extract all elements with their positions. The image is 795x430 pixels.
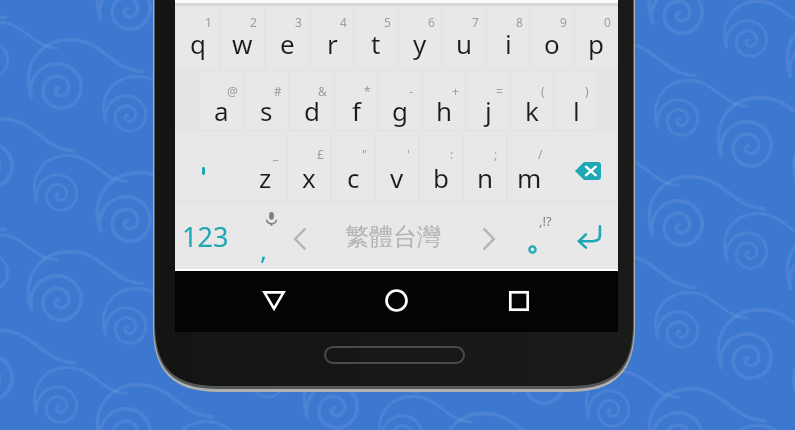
staticText: m xyxy=(517,160,542,195)
staticText: 2 xyxy=(250,14,257,30)
button[interactable]: - xyxy=(379,71,421,130)
staticText: ; xyxy=(494,146,498,162)
staticText: o xyxy=(544,26,560,61)
button[interactable]: 繁體台灣 xyxy=(285,202,503,268)
staticText: y xyxy=(413,26,427,61)
staticText: ' xyxy=(407,146,410,162)
staticText: a xyxy=(214,93,229,128)
staticText: w xyxy=(232,26,253,61)
staticText: * xyxy=(364,83,371,99)
staticText: 0 xyxy=(604,14,611,30)
staticText: 4 xyxy=(340,14,347,30)
staticText: p xyxy=(588,26,604,61)
button[interactable]: Period xyxy=(503,202,564,268)
staticText: , xyxy=(260,232,267,267)
staticText: 3 xyxy=(295,14,302,30)
staticText: - xyxy=(409,83,413,99)
button[interactable]: ' xyxy=(376,132,418,200)
staticText: e xyxy=(280,26,295,61)
staticText: £ xyxy=(317,146,324,162)
staticText: 9 xyxy=(560,14,567,30)
button[interactable]: 2 xyxy=(221,7,264,69)
staticText: 123 xyxy=(182,218,229,255)
button[interactable]: Comma xyxy=(247,202,285,268)
staticText: ) xyxy=(585,83,589,99)
button[interactable]: ; xyxy=(464,132,506,200)
staticText: k xyxy=(525,93,539,128)
staticText: 6 xyxy=(428,14,435,30)
staticText: " xyxy=(362,146,367,162)
staticText: = xyxy=(496,83,503,99)
button[interactable]: + xyxy=(423,71,465,130)
button[interactable]: 0 xyxy=(575,7,617,69)
staticText: ,!? xyxy=(539,212,552,230)
button[interactable]: 123 xyxy=(175,202,247,268)
staticText: i xyxy=(505,26,512,61)
staticText: t xyxy=(371,26,381,61)
button[interactable]: 5 xyxy=(355,7,397,69)
button[interactable]: " xyxy=(332,132,374,200)
staticText: j xyxy=(485,93,492,128)
button[interactable]: 9 xyxy=(531,7,573,69)
staticText: _ xyxy=(273,146,279,162)
button[interactable]: & xyxy=(290,71,333,130)
button[interactable]: # xyxy=(245,71,288,130)
staticText: 繁體台灣 xyxy=(345,222,441,252)
button[interactable]: Apostrophe xyxy=(175,132,243,200)
staticText: ( xyxy=(541,83,545,99)
button[interactable]: ( xyxy=(511,71,553,130)
button[interactable]: / xyxy=(508,132,550,200)
button[interactable]: 1 xyxy=(176,7,219,69)
staticText: 7 xyxy=(472,14,479,30)
button[interactable]: 7 xyxy=(443,7,485,69)
staticText: x xyxy=(302,160,316,195)
staticText: z xyxy=(259,160,272,195)
button[interactable]: 6 xyxy=(399,7,441,69)
staticText: & xyxy=(318,83,327,99)
button[interactable]: _ xyxy=(244,132,286,200)
staticText: f xyxy=(352,93,361,128)
button[interactable]: £ xyxy=(288,132,330,200)
staticText: q xyxy=(190,26,206,61)
staticText: s xyxy=(260,93,273,128)
staticText: 8 xyxy=(516,14,523,30)
button[interactable]: Back xyxy=(249,271,299,330)
staticText: : xyxy=(450,146,454,162)
button[interactable]: ) xyxy=(555,71,597,130)
staticText: l xyxy=(573,93,580,128)
staticText: r xyxy=(327,26,338,61)
staticText: u xyxy=(456,26,473,61)
button[interactable]: Home xyxy=(371,271,421,330)
button[interactable]: Backspace xyxy=(551,132,616,200)
staticText: c xyxy=(347,160,360,195)
button[interactable]: @ xyxy=(200,71,243,130)
staticText: n xyxy=(477,160,494,195)
staticText: g xyxy=(392,93,408,128)
staticText: @ xyxy=(227,83,238,99)
button[interactable]: * xyxy=(335,71,377,130)
button[interactable]: 3 xyxy=(266,7,309,69)
staticText: + xyxy=(452,83,459,99)
staticText: h xyxy=(436,93,453,128)
button[interactable]: Enter xyxy=(564,202,618,268)
button[interactable]: 8 xyxy=(487,7,529,69)
staticText: v xyxy=(390,160,404,195)
staticText: b xyxy=(433,160,449,195)
staticText: d xyxy=(304,93,320,128)
staticText: 5 xyxy=(384,14,391,30)
staticText: / xyxy=(538,146,543,162)
button[interactable]: : xyxy=(420,132,462,200)
staticText: # xyxy=(274,83,282,99)
button[interactable]: Recent apps xyxy=(494,271,544,330)
button[interactable]: 4 xyxy=(311,7,353,69)
button[interactable]: = xyxy=(467,71,509,130)
staticText: 1 xyxy=(205,14,212,30)
